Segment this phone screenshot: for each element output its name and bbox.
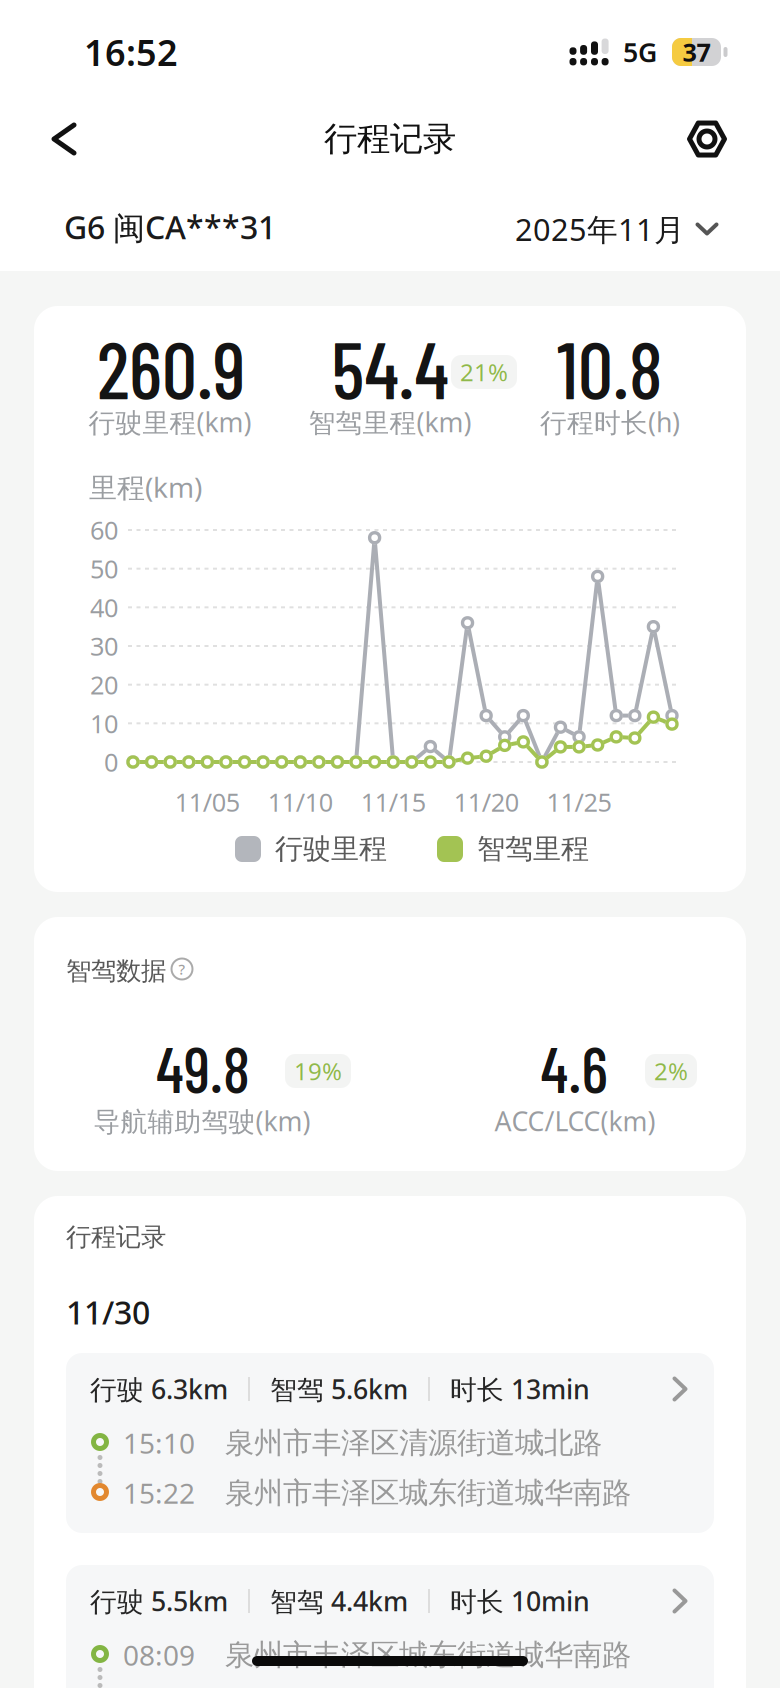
staticText: ACC/LCC(km) (494, 1103, 655, 1139)
staticText: 15:10 (123, 1424, 195, 1462)
staticText: 行程记录 (66, 1221, 166, 1252)
staticText: 11/30 (66, 1291, 150, 1333)
staticText: 行驶里程 (275, 832, 387, 866)
staticText: 行程时长(h) (540, 404, 680, 440)
staticText: 里程(km) (89, 468, 202, 506)
staticText: 时长 10min (450, 1583, 590, 1619)
staticText: 泉州市丰泽区城东街道城华南路 (225, 1475, 631, 1511)
staticText: 时长 13min (450, 1371, 590, 1407)
staticText: 10.8 (557, 321, 663, 415)
staticText: 54.4 (331, 321, 448, 415)
staticText: G6 闽CA***31 (64, 206, 276, 248)
staticText: 0 (104, 745, 118, 779)
button[interactable]: 帮助 (171, 958, 193, 980)
button[interactable]: 行驶 5.5km (66, 1565, 714, 1688)
staticText: 30 (90, 629, 118, 663)
staticText: 11/15 (361, 785, 426, 819)
staticText: 50 (90, 552, 118, 585)
staticText: 11/20 (454, 785, 519, 819)
staticText: 行程记录 (324, 118, 456, 159)
staticText: 智驾里程(km) (308, 404, 471, 440)
staticText: 11/25 (547, 785, 612, 819)
staticText: 260.9 (97, 321, 245, 415)
staticText: ? (178, 959, 185, 979)
button[interactable]: 行驶 6.3km (66, 1353, 714, 1533)
staticText: 泉州市丰泽区城东街道城华南路 (225, 1637, 631, 1673)
staticText: 智驾 4.4km (270, 1583, 408, 1619)
staticText: 泉州市丰泽区清源街道城北路 (225, 1425, 602, 1461)
staticText: 4.6 (540, 1030, 607, 1106)
staticText: 11/10 (268, 785, 333, 819)
staticText: 20 (90, 668, 118, 701)
staticText: 49.8 (156, 1030, 250, 1106)
staticText: 5G (623, 34, 657, 70)
staticText: 2025年11月 (515, 209, 685, 249)
staticText: 行驶里程(km) (88, 404, 251, 440)
button[interactable]: 2025年11月 (515, 209, 719, 249)
staticText: 37 (682, 35, 710, 69)
staticText: 智驾数据 (66, 955, 166, 986)
staticText: 15:22 (123, 1474, 195, 1512)
staticText: 08:09 (123, 1636, 195, 1674)
staticText: 11/05 (175, 785, 240, 819)
staticText: 2% (654, 1055, 688, 1087)
button[interactable]: Back (34, 109, 94, 169)
staticText: 19% (294, 1055, 342, 1087)
staticText: 60 (90, 513, 118, 547)
staticText: 智驾 5.6km (270, 1371, 408, 1407)
staticText: 16:52 (84, 28, 178, 76)
staticText: 导航辅助驾驶(km) (93, 1103, 310, 1139)
staticText: 智驾里程 (477, 832, 589, 866)
button[interactable]: Settings (679, 111, 735, 167)
staticText: 行驶 6.3km (90, 1371, 228, 1407)
staticText: 21% (460, 356, 508, 388)
staticText: 行驶 5.5km (90, 1583, 228, 1619)
staticText: 40 (90, 590, 118, 624)
staticText: 10 (90, 706, 118, 740)
